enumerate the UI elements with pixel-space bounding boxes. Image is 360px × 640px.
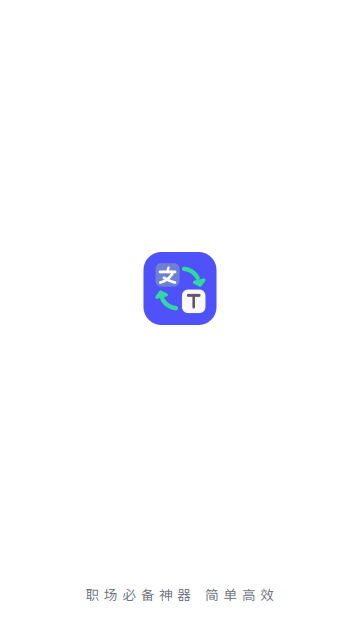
staticText: 必 (122, 584, 136, 604)
staticText: 器 (177, 584, 191, 604)
staticText: 高 (242, 584, 256, 604)
staticText: 简 (205, 584, 219, 604)
staticText: 单 (224, 584, 238, 604)
staticText: 职 (86, 584, 100, 604)
staticText: 神 (159, 584, 173, 604)
staticText: 备 (141, 584, 155, 604)
staticText: 场 (104, 584, 118, 604)
staticText: 效 (260, 584, 274, 604)
